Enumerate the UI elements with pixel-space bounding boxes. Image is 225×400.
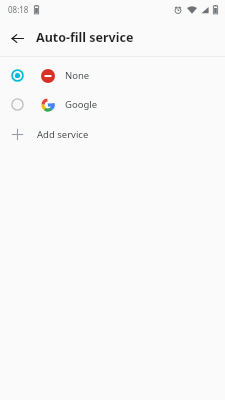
staticText: Google bbox=[65, 98, 98, 111]
staticText: Auto-fill service bbox=[36, 29, 134, 46]
staticText: Add service bbox=[37, 128, 89, 141]
button[interactable]: Add service bbox=[0, 119, 225, 149]
button[interactable]: None bbox=[0, 61, 225, 90]
button[interactable]: Back bbox=[4, 25, 30, 51]
staticText: 08:18 bbox=[8, 4, 29, 15]
staticText: None bbox=[65, 69, 90, 82]
button[interactable]: Google bbox=[0, 90, 225, 119]
